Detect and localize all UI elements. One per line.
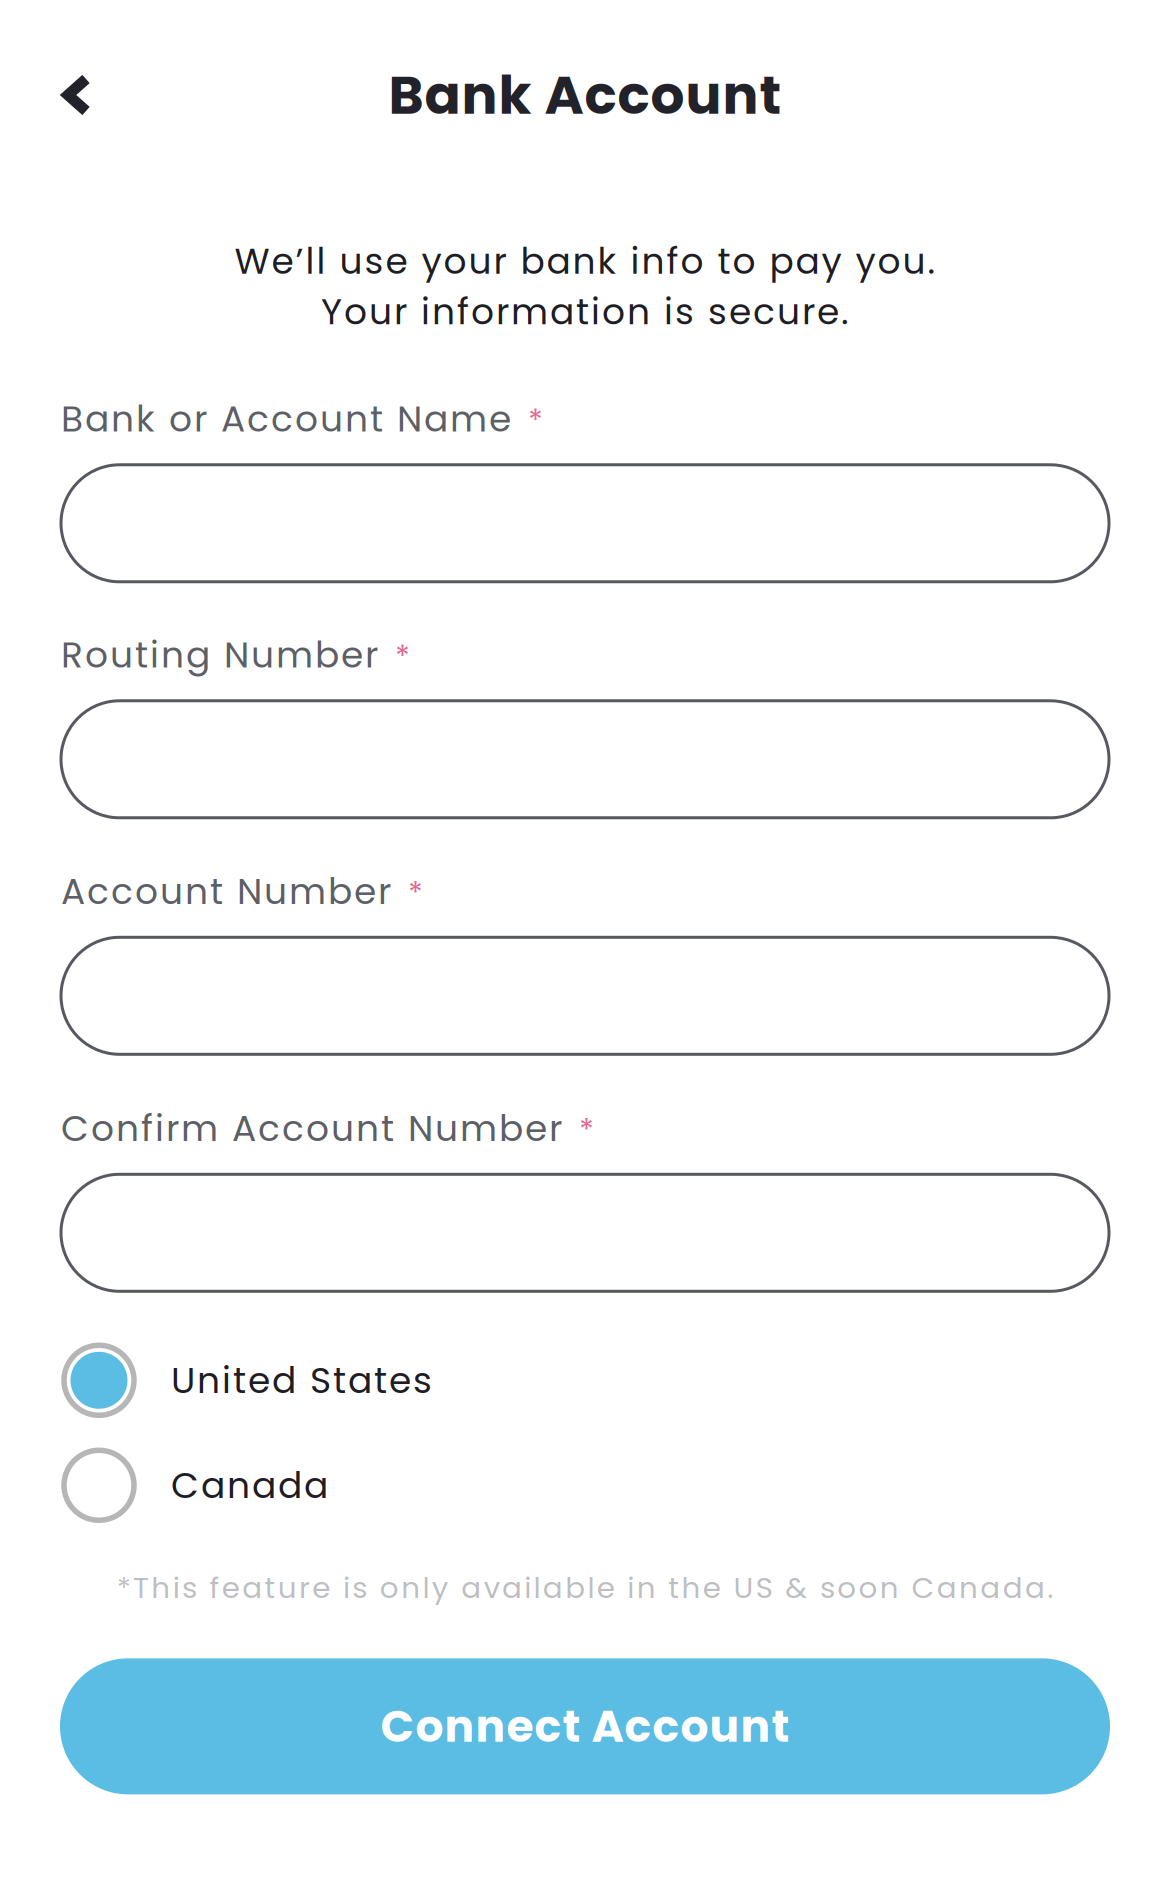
staticText: * bbox=[579, 1109, 594, 1152]
staticText: * bbox=[528, 399, 543, 442]
staticText: Bank or Account Name bbox=[61, 394, 511, 444]
staticText: Account Number bbox=[61, 866, 391, 916]
staticText: Your information is secure. bbox=[321, 286, 849, 337]
staticText: *This feature is only available in the U… bbox=[117, 1567, 1053, 1608]
button[interactable]: Back bbox=[0, 44, 110, 146]
button[interactable]: United States bbox=[61, 1343, 1109, 1417]
button[interactable]: Canada bbox=[61, 1448, 1109, 1522]
staticText: United States bbox=[171, 1355, 432, 1405]
staticText: Routing Number bbox=[61, 630, 378, 680]
staticText: Canada bbox=[171, 1460, 328, 1510]
staticText: * bbox=[395, 635, 410, 678]
staticText: Connect Account bbox=[380, 1696, 789, 1757]
staticText: * bbox=[408, 872, 423, 915]
staticText: Bank Account bbox=[388, 58, 781, 132]
staticText: We’ll use your bank info to pay you. bbox=[234, 236, 935, 286]
button[interactable]: Connect Account bbox=[60, 1658, 1110, 1794]
staticText: Confirm Account Number bbox=[61, 1103, 562, 1153]
